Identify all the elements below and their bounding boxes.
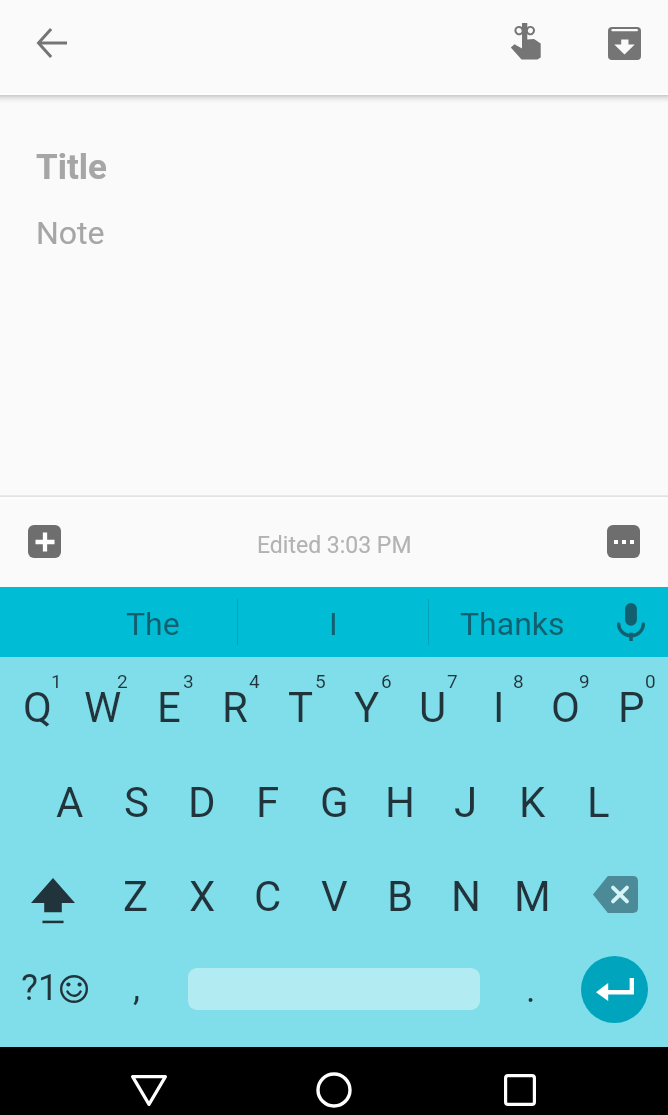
button[interactable]: D (169, 754, 235, 850)
button[interactable]: J (433, 754, 499, 850)
staticText: 1 (51, 670, 62, 692)
staticText: C (254, 872, 282, 921)
button[interactable]: Recent apps (470, 1047, 569, 1115)
button[interactable]: Z (103, 848, 169, 944)
staticText: Z (123, 872, 149, 921)
staticText: R (222, 683, 248, 732)
staticText: M (514, 872, 551, 921)
staticText: Thanks (460, 605, 565, 643)
staticText: W (84, 683, 122, 732)
staticText: F (256, 778, 280, 827)
button[interactable]: Period (496, 936, 566, 1044)
button[interactable]: R (202, 657, 268, 747)
button[interactable]: Note (36, 214, 596, 254)
staticText: P (618, 683, 645, 732)
button[interactable]: X (169, 848, 235, 944)
staticText: D (188, 778, 216, 827)
staticText: U (419, 683, 447, 732)
button[interactable]: V (301, 848, 367, 944)
button[interactable]: Home (284, 1047, 383, 1115)
staticText: 7 (447, 670, 458, 692)
button[interactable]: Thanks (429, 587, 595, 657)
staticText: Note (36, 214, 105, 252)
button[interactable]: S (103, 754, 169, 850)
staticText: Edited 3:03 PM (257, 532, 412, 559)
staticText: J (454, 778, 478, 827)
button[interactable]: Voice input (595, 587, 667, 657)
button[interactable]: Enter (566, 939, 663, 1047)
button[interactable]: P (598, 657, 664, 747)
button[interactable]: Shift (4, 853, 101, 949)
staticText: Q (23, 683, 52, 732)
staticText: , (133, 967, 141, 1009)
button[interactable]: K (499, 754, 565, 850)
button[interactable]: G (301, 754, 367, 850)
staticText: 5 (315, 670, 326, 692)
staticText: 0 (645, 670, 656, 692)
button[interactable]: Q (4, 657, 70, 747)
button[interactable]: Space (171, 939, 497, 1047)
staticText: S (124, 778, 149, 827)
staticText: 9 (579, 670, 590, 692)
button[interactable]: L (565, 754, 631, 850)
button[interactable]: Y (334, 657, 400, 747)
staticText: ?1 (21, 967, 59, 1009)
button[interactable]: Delete (565, 846, 666, 942)
button[interactable]: I (466, 657, 532, 747)
button[interactable]: B (367, 848, 433, 944)
button[interactable]: N (433, 848, 499, 944)
staticText: L (587, 778, 610, 827)
button[interactable]: C (235, 848, 301, 944)
button[interactable]: I (238, 587, 428, 657)
button[interactable]: Symbols and emoji (6, 935, 103, 1043)
staticText: O (551, 683, 580, 732)
button[interactable]: Archive (594, 13, 654, 73)
button[interactable]: O (532, 657, 598, 747)
staticText: T (288, 683, 314, 732)
button[interactable]: The (64, 587, 241, 657)
button[interactable]: Navigate up (22, 13, 82, 73)
staticText: N (451, 872, 481, 921)
staticText: The (126, 605, 180, 643)
staticText: 2 (117, 670, 128, 692)
button[interactable]: H (367, 754, 433, 850)
button[interactable]: More options (597, 515, 649, 567)
staticText: 4 (249, 670, 260, 692)
button[interactable]: M (499, 848, 565, 944)
button[interactable]: E (136, 657, 202, 747)
button[interactable]: Reminder (496, 12, 556, 72)
button[interactable]: Comma (102, 934, 172, 1042)
staticText: X (189, 872, 216, 921)
staticText: V (321, 872, 348, 921)
button[interactable]: T (268, 657, 334, 747)
staticText: 6 (381, 670, 392, 692)
staticText: . (526, 969, 536, 1011)
staticText: G (320, 778, 349, 827)
button[interactable]: U (400, 657, 466, 747)
button[interactable]: Title (36, 147, 556, 191)
staticText: A (56, 778, 84, 827)
button[interactable]: Back (99, 1047, 198, 1115)
staticText: Y (354, 683, 380, 732)
button[interactable]: W (70, 657, 136, 747)
staticText: 3 (183, 670, 194, 692)
button[interactable]: A (37, 754, 103, 850)
staticText: B (387, 872, 414, 921)
button[interactable]: Add (18, 515, 70, 567)
staticText: E (157, 683, 181, 732)
staticText: H (385, 778, 415, 827)
button[interactable]: F (235, 754, 301, 850)
staticText: 8 (513, 670, 524, 692)
staticText: K (519, 778, 546, 827)
staticText: I (493, 683, 505, 732)
staticText: I (329, 605, 338, 643)
staticText: Title (36, 147, 107, 188)
